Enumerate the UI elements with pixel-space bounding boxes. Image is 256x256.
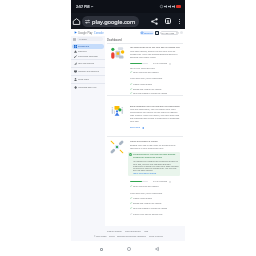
staticText: Feedback (144, 32, 153, 35)
staticText: Test and release (78, 62, 94, 65)
button[interactable]: Grow users (71, 76, 105, 83)
staticText: Create and publish a release (130, 140, 210, 143)
staticText: Read more (130, 126, 141, 129)
button[interactable]: Statistics (72, 49, 104, 54)
button[interactable]: Home (71, 13, 82, 29)
staticText: My App Name (161, 32, 175, 35)
staticText: With pre-registration, you can publish y… (130, 108, 180, 123)
button[interactable]: Publishing overview (72, 54, 104, 59)
staticText: Dashboard (78, 45, 89, 48)
staticText: With open testing, anyone can join your … (130, 50, 180, 59)
button[interactable]: Share (148, 13, 161, 29)
button[interactable]: All apps (77, 37, 103, 41)
button[interactable]: Developer Distribution Agreement (117, 235, 147, 237)
button[interactable]: More options (174, 13, 185, 29)
button[interactable]: Send the release to Google for review (130, 206, 168, 210)
button[interactable]: Product updates (107, 230, 122, 233)
staticText: Monetize with Play (78, 86, 97, 89)
staticText: Publish your app on Google Play (133, 213, 163, 216)
staticText: Create a new release (133, 197, 152, 200)
staticText: Check with users, don't understand (130, 77, 163, 80)
staticText: All apps (79, 38, 87, 41)
staticText: Monitor and improve (78, 70, 99, 73)
button[interactable]: Review and confirm the release (130, 87, 162, 91)
staticText: Congratulations! Your app has been grant… (133, 153, 179, 159)
staticText: Dashboard (107, 38, 122, 42)
button[interactable]: Select countries and regions (130, 184, 159, 188)
button[interactable]: Privacy (109, 235, 115, 237)
button[interactable]: Terms of Service (149, 235, 163, 237)
staticText: You applied for Google Play production a… (133, 160, 179, 172)
button[interactable]: Publish your app on Google Play (130, 212, 163, 216)
staticText: 2:57 PM (76, 4, 90, 9)
staticText: Review and confirm the release (133, 202, 162, 205)
button[interactable]: Account (180, 31, 183, 34)
staticText: Select countries and regions (133, 71, 159, 74)
button[interactable]: Create a new release (130, 196, 152, 200)
staticText: 3 of 5 complete (153, 180, 168, 183)
button[interactable]: Send the release to Google for review (130, 91, 168, 95)
staticText: Build excitement for your app with pre-r… (130, 105, 210, 108)
button[interactable]: © 2024 Google (94, 235, 107, 237)
staticText: play.google.com/ (92, 18, 137, 26)
button[interactable]: Back (152, 244, 162, 254)
button[interactable]: Select countries and regions (130, 70, 159, 74)
staticText: Publishing overview (78, 55, 98, 58)
button[interactable]: Help (144, 230, 149, 233)
button[interactable]: Review and confirm the release (130, 201, 162, 205)
staticText: Console (94, 31, 104, 35)
button[interactable]: Feedback (140, 31, 154, 35)
staticText: Google Play (78, 31, 93, 35)
staticText: Grow users (78, 78, 90, 81)
staticText: Let anyone sign up to test your app on G… (130, 46, 210, 49)
button[interactable]: Dashboard (72, 44, 104, 49)
button[interactable]: Recent apps (96, 244, 106, 254)
button[interactable]: Switch tabs (161, 13, 174, 29)
staticText: Select countries and regions (133, 185, 159, 188)
staticText: Release your app to real users on Google… (130, 144, 180, 150)
staticText: Send the release to Google for review (133, 92, 168, 95)
button[interactable]: play.google.com/ (82, 16, 139, 27)
staticText: 3 of 5 complete (153, 62, 168, 65)
staticText: 6 (167, 19, 170, 24)
button[interactable]: Monetize with Play (71, 84, 105, 91)
button[interactable]: Create a new release (130, 82, 152, 86)
button[interactable]: Learn more about testing (133, 172, 157, 175)
staticText: Set up your initial test track (130, 67, 155, 70)
button[interactable]: Home (124, 244, 134, 254)
staticText: Check with users, don't understand (130, 192, 163, 195)
button[interactable]: Status dashboard (125, 230, 141, 233)
button[interactable]: Monitor and improve (71, 68, 105, 75)
staticText: Send the release to Google for review (133, 207, 168, 210)
staticText: Statistics (78, 50, 87, 53)
button[interactable]: My App Name (160, 31, 179, 35)
staticText: Create a new release (133, 83, 152, 86)
button[interactable]: Read more (130, 126, 144, 129)
button[interactable]: Test and release (71, 60, 105, 67)
staticText: Review and confirm the release (133, 88, 162, 91)
